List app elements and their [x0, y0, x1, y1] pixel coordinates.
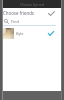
- staticText: Find: [11, 19, 20, 24]
- button[interactable]: Kyle: [0, 27, 64, 40]
- staticText: Kyle: [16, 31, 24, 36]
- staticText: Choose friends: [3, 10, 34, 16]
- button[interactable]: Find: [0, 17, 64, 26]
- staticText: Choose Synced: [20, 2, 45, 7]
- button[interactable]: Choose friends: [0, 8, 64, 17]
- button[interactable]: Done: [46, 9, 57, 17]
